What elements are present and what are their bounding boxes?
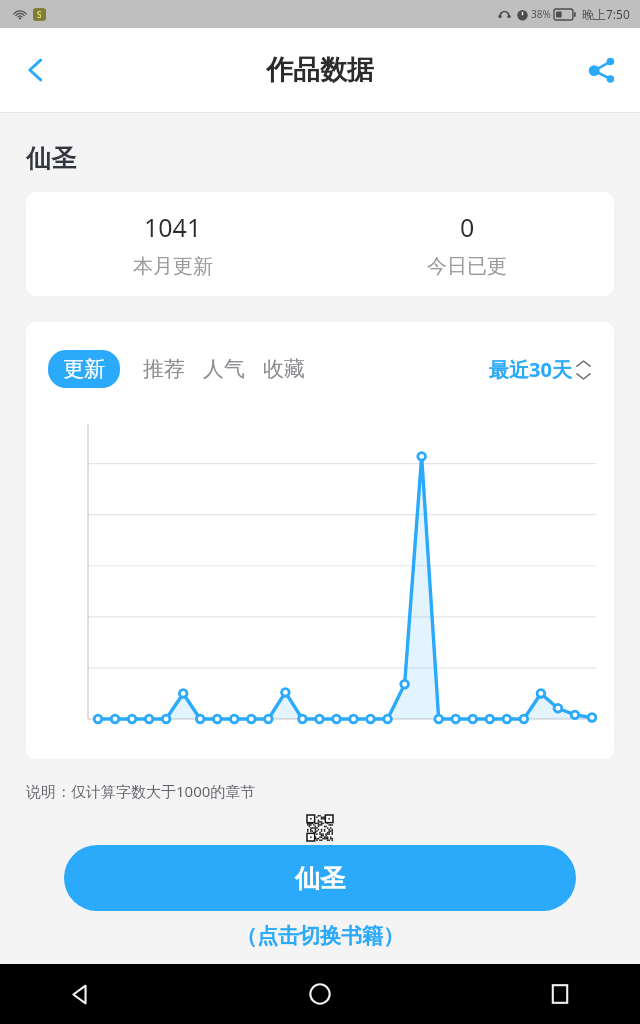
- staticText: 说明：仅计算字数大于1000的章节: [26, 781, 256, 801]
- staticText: 更新: [63, 356, 105, 382]
- staticText: 人气: [203, 356, 245, 382]
- button[interactable]: 推荐: [134, 350, 194, 388]
- button[interactable]: 最近30天: [485, 352, 594, 387]
- staticText: 本月更新: [133, 254, 213, 279]
- button[interactable]: （点击切换书籍）: [0, 923, 640, 949]
- staticText: 0: [460, 210, 475, 244]
- button[interactable]: 人气: [194, 350, 254, 388]
- button[interactable]: Home: [294, 968, 346, 1020]
- staticText: 最近30天: [489, 356, 572, 383]
- staticText: 推荐: [143, 356, 185, 382]
- staticText: 作品数据: [266, 53, 374, 87]
- button[interactable]: 收藏: [254, 350, 314, 388]
- button[interactable]: Share: [574, 42, 630, 98]
- button[interactable]: Recents: [534, 968, 586, 1020]
- button[interactable]: 0: [320, 192, 614, 296]
- staticText: 38%: [531, 7, 551, 21]
- staticText: （点击切换书籍）: [236, 923, 404, 949]
- staticText: 仙圣: [295, 863, 345, 894]
- staticText: 今日已更: [427, 254, 507, 279]
- staticText: 收藏: [263, 356, 305, 382]
- staticText: 仙圣: [26, 143, 76, 174]
- button[interactable]: 更新: [48, 350, 120, 388]
- staticText: 晚上7:50: [582, 6, 630, 22]
- staticText: 1041: [144, 210, 202, 244]
- button[interactable]: 仙圣: [64, 845, 576, 911]
- button[interactable]: 1041: [26, 192, 320, 296]
- button[interactable]: Back: [8, 42, 64, 98]
- staticText: S: [37, 9, 42, 20]
- button[interactable]: Back: [54, 968, 106, 1020]
